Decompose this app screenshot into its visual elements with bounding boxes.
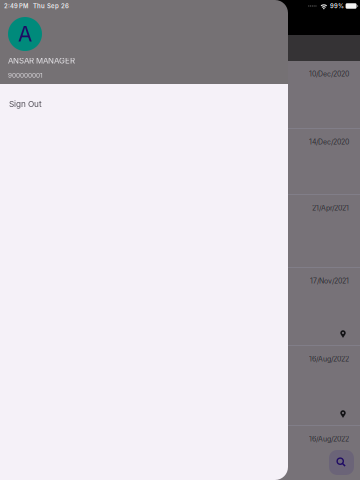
staticText: 21/Apr/2021 bbox=[312, 204, 349, 212]
button[interactable]: 16/Aug/2022 bbox=[0, 426, 360, 480]
button[interactable]: 10/Dec/2020 bbox=[0, 61, 360, 128]
staticText: 16/Aug/2022 bbox=[309, 355, 349, 363]
button[interactable]: 14/Dec/2020 bbox=[0, 129, 360, 194]
staticText: Sign Out bbox=[9, 99, 42, 109]
staticText: 17/Nov/2021 bbox=[310, 277, 349, 285]
staticText: Thu Sep 26 bbox=[33, 2, 69, 10]
button[interactable]: Search bbox=[329, 450, 354, 475]
staticText: 99% bbox=[330, 2, 344, 10]
staticText: A bbox=[18, 21, 32, 46]
staticText: 900000001 bbox=[8, 71, 43, 79]
button[interactable]: 21/Apr/2021 bbox=[0, 195, 360, 267]
button[interactable]: 17/Nov/2021 bbox=[0, 268, 360, 345]
staticText: ANSAR MANAGER bbox=[8, 56, 75, 65]
button[interactable]: Sign Out bbox=[0, 93, 288, 115]
button[interactable]: 16/Aug/2022 bbox=[0, 346, 360, 425]
staticText: 10/Dec/2020 bbox=[309, 70, 349, 78]
staticText: 14/Dec/2020 bbox=[309, 138, 349, 146]
staticText: 16/Aug/2022 bbox=[309, 435, 349, 443]
staticText: 2:49 PM bbox=[4, 2, 28, 10]
